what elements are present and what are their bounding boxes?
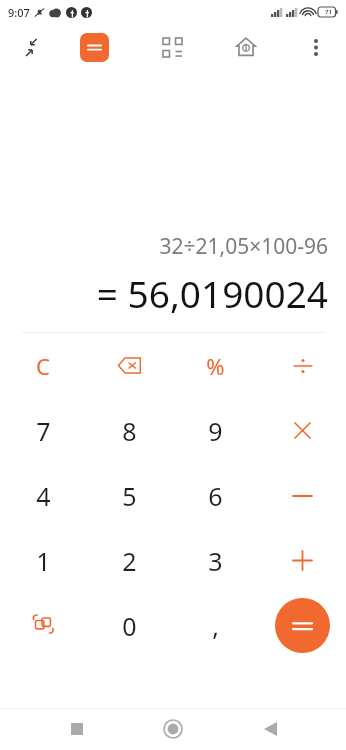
staticText: 7: [36, 414, 51, 448]
button[interactable]: C: [0, 333, 86, 398]
staticText: 9:07: [8, 5, 30, 20]
staticText: = 56,0190024: [96, 268, 328, 318]
button[interactable]: More options: [296, 27, 336, 67]
button[interactable]: Plus: [259, 528, 346, 593]
button[interactable]: 5: [86, 463, 172, 528]
staticText: 0: [122, 609, 137, 643]
staticText: %: [206, 351, 225, 381]
button[interactable]: Minus: [259, 463, 346, 528]
button[interactable]: Convert: [0, 593, 86, 658]
button[interactable]: Equals: [275, 598, 330, 653]
button[interactable]: Recents: [57, 709, 97, 749]
button[interactable]: Multiply: [259, 398, 346, 463]
staticText: ,: [212, 609, 219, 643]
button[interactable]: 8: [86, 398, 172, 463]
staticText: 2: [122, 544, 137, 578]
staticText: 1: [36, 544, 51, 578]
button[interactable]: 0: [86, 593, 172, 658]
button[interactable]: Divide: [259, 333, 346, 398]
button[interactable]: 7: [0, 398, 86, 463]
staticText: 6: [208, 479, 223, 513]
staticText: C: [36, 351, 50, 381]
button[interactable]: Calculator: [74, 27, 114, 67]
staticText: 9: [208, 414, 223, 448]
button[interactable]: 9: [172, 398, 259, 463]
button[interactable]: 1: [0, 528, 86, 593]
button[interactable]: Converters: [152, 27, 192, 67]
button[interactable]: Loan calculator: [226, 27, 266, 67]
button[interactable]: Collapse: [14, 30, 48, 64]
staticText: 3: [208, 544, 223, 578]
button[interactable]: Backspace: [86, 333, 172, 398]
button[interactable]: Home: [153, 709, 193, 749]
staticText: 5: [122, 479, 137, 513]
staticText: 4: [36, 479, 51, 513]
staticText: 8: [122, 414, 137, 448]
button[interactable]: 3: [172, 528, 259, 593]
staticText: 32÷21,05×100-96: [159, 232, 328, 261]
button[interactable]: 6: [172, 463, 259, 528]
button[interactable]: %: [172, 333, 259, 398]
button[interactable]: Back: [250, 709, 290, 749]
staticText: 71: [325, 8, 332, 16]
button[interactable]: ,: [172, 593, 259, 658]
button[interactable]: 2: [86, 528, 172, 593]
button[interactable]: 4: [0, 463, 86, 528]
